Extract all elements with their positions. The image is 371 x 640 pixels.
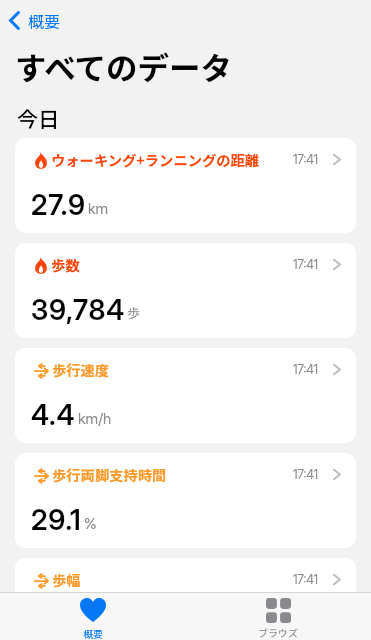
button[interactable]: 歩行速度 — [15, 348, 356, 443]
staticText: 歩行両脚支持時間 — [52, 464, 167, 485]
staticText: すべてのデータ — [15, 43, 233, 89]
staticText: 17:41 — [293, 572, 319, 587]
staticText: ウォーキング+ランニングの距離 — [51, 149, 260, 170]
staticText: 歩行速度 — [52, 359, 110, 380]
staticText: 歩幅 — [52, 569, 81, 590]
button[interactable]: 歩行両脚支持時間 — [15, 453, 356, 548]
staticText: 27.9 — [31, 188, 86, 222]
other: ブラウズ — [266, 598, 291, 621]
staticText: 概要 — [28, 9, 61, 32]
button[interactable]: 歩数 — [15, 243, 356, 338]
button[interactable]: 概要 — [0, 4, 61, 36]
staticText: 17:41 — [293, 257, 319, 272]
staticText: 歩数 — [51, 254, 80, 275]
staticText: 17:41 — [293, 362, 319, 377]
staticText: km/h — [78, 409, 112, 427]
button[interactable]: ウォーキング+ランニングの距離 — [15, 138, 356, 233]
other: 概要 — [80, 598, 106, 622]
button[interactable]: 歩幅 — [15, 558, 356, 640]
staticText: 今日 — [17, 103, 59, 133]
staticText: 概要 — [83, 626, 103, 640]
button[interactable]: ブラウズ — [185, 593, 371, 640]
staticText: 17:41 — [293, 467, 319, 482]
staticText: 17:41 — [293, 152, 319, 167]
staticText: 歩 — [127, 303, 141, 322]
staticText: 29.1 — [31, 503, 82, 537]
staticText: 4.4 — [31, 398, 76, 432]
staticText: 39,784 — [31, 293, 126, 327]
button[interactable]: 概要 — [0, 593, 185, 640]
staticText: cm — [69, 619, 90, 637]
staticText: % — [84, 514, 97, 532]
staticText: ブラウズ — [258, 625, 298, 639]
staticText: km — [88, 199, 109, 217]
